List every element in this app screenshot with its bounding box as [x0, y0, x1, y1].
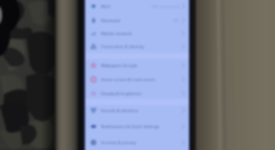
staticText: Bluetooth	[101, 18, 121, 24]
staticText: Connection & sharing	[101, 44, 144, 50]
staticText: Wallpapers & style	[101, 63, 138, 69]
button[interactable]: Security & privacy	[85, 137, 189, 148]
staticText: Sounds & vibration	[101, 108, 139, 114]
button[interactable]: Wallpapers & style	[85, 60, 189, 71]
button[interactable]: Home screen & Lock screen	[85, 74, 189, 85]
staticText: Mobile network	[101, 31, 132, 37]
button[interactable]: Mobile network	[85, 28, 189, 39]
button[interactable]: Sounds & vibration	[85, 105, 189, 116]
button[interactable]: Wi-Fi	[85, 1, 189, 12]
staticText: Security & privacy	[101, 140, 136, 146]
button[interactable]: Bluetooth	[85, 15, 189, 26]
staticText: Display & brightness	[101, 91, 142, 97]
button[interactable]: Notifications & Quick Settings	[85, 121, 189, 132]
button[interactable]: Display & brightness	[85, 88, 189, 99]
staticText: Notifications & Quick Settings	[101, 124, 160, 130]
button[interactable]: Connection & sharing	[85, 41, 189, 52]
staticText: Wi-Fi	[101, 4, 111, 10]
staticText: Home screen & Lock screen	[101, 77, 156, 83]
